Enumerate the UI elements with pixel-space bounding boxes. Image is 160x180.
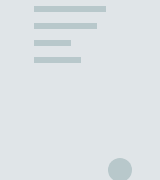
button[interactable]: Add: [108, 158, 132, 180]
